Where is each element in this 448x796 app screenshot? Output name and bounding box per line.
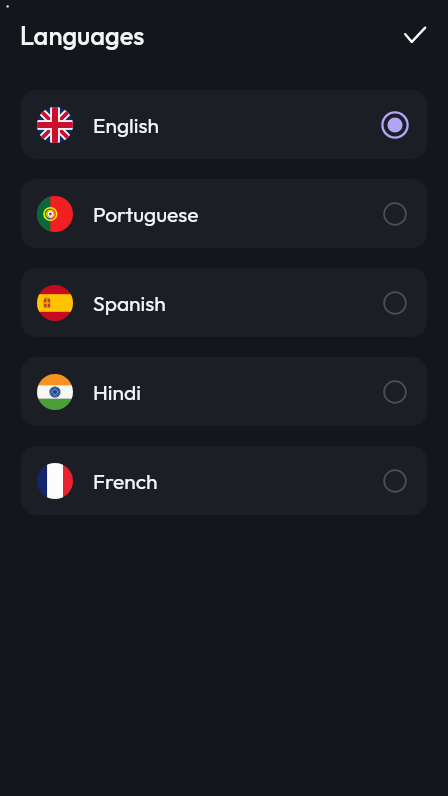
button[interactable]: French xyxy=(21,446,427,515)
button[interactable]: Spanish xyxy=(21,268,427,337)
staticText: Languages xyxy=(20,19,145,51)
staticText: French xyxy=(93,468,158,494)
staticText: Hindi xyxy=(93,379,141,405)
button[interactable]: English xyxy=(21,90,427,159)
button[interactable]: Portuguese xyxy=(21,179,427,248)
staticText: Portuguese xyxy=(93,201,199,227)
button[interactable]: Hindi xyxy=(21,357,427,426)
staticText: Spanish xyxy=(93,290,166,316)
button[interactable]: Confirm selection xyxy=(395,14,435,54)
staticText: English xyxy=(93,112,159,138)
